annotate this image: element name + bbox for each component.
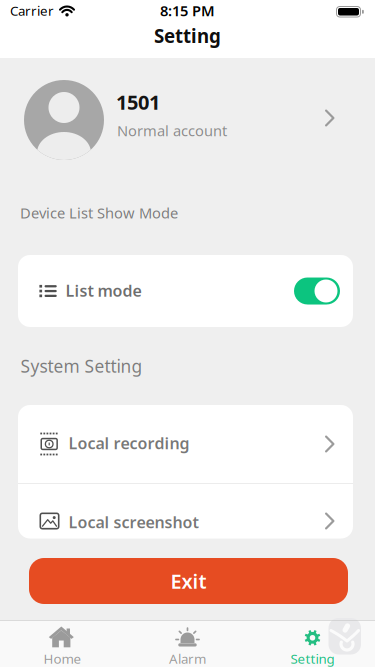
staticText: 8:15 PM — [160, 1, 215, 20]
staticText: 1501 — [116, 89, 160, 115]
staticText: Alarm — [169, 650, 206, 667]
button[interactable]: Local screenshot — [18, 484, 353, 538]
staticText: Setting — [290, 650, 334, 667]
staticText: Exit — [170, 568, 206, 594]
staticText: Home — [43, 650, 81, 667]
staticText: Local screenshot — [68, 511, 198, 533]
staticText: System Setting — [20, 354, 142, 377]
button[interactable]: Alarm — [125, 621, 250, 667]
button[interactable]: Setting — [250, 621, 375, 667]
button[interactable]: List mode — [18, 255, 353, 327]
staticText: Device List Show Mode — [20, 203, 178, 223]
staticText: Carrier — [10, 2, 54, 19]
staticText: List mode — [65, 280, 141, 301]
button[interactable]: Local recording — [18, 405, 353, 483]
staticText: Setting — [154, 23, 221, 48]
button[interactable]: 1501 — [24, 80, 335, 160]
button[interactable]: Exit — [29, 558, 348, 604]
button[interactable]: Home — [0, 621, 125, 667]
staticText: Normal account — [117, 121, 227, 140]
staticText: Local recording — [68, 432, 189, 454]
